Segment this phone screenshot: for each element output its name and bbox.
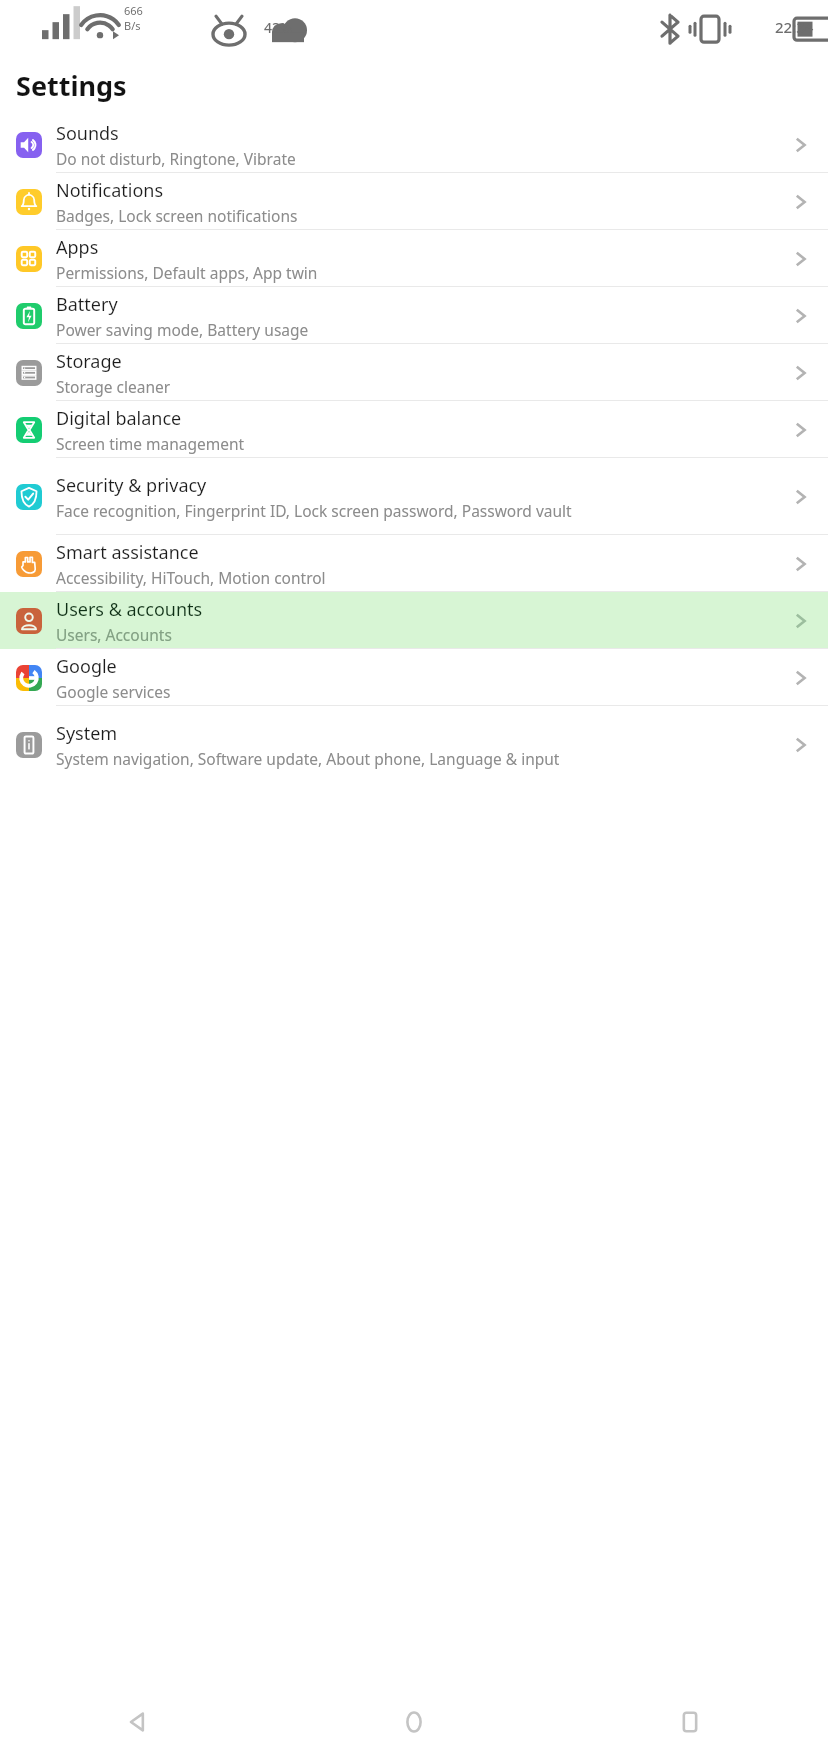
staticText: B/s xyxy=(124,18,141,33)
staticText: Screen time management xyxy=(56,433,245,454)
staticText: Battery xyxy=(56,292,118,317)
button[interactable]: Back xyxy=(0,1696,276,1748)
staticText: Users, Accounts xyxy=(56,624,172,645)
staticText: Notifications xyxy=(56,178,164,203)
other: Open Smart assistance xyxy=(788,551,814,577)
staticText: Users & accounts xyxy=(56,597,203,622)
button[interactable]: Smart assistance xyxy=(0,535,828,592)
staticText: Storage xyxy=(56,349,122,374)
staticText: Google services xyxy=(56,681,171,702)
staticText: Face recognition, Fingerprint ID, Lock s… xyxy=(56,500,572,521)
staticText: Storage cleaner xyxy=(56,376,171,397)
button[interactable]: Apps xyxy=(0,230,828,287)
staticText: Apps xyxy=(56,235,99,260)
other: Open Security & privacy xyxy=(788,484,814,510)
other: Open Notifications xyxy=(788,189,814,215)
other: Open Storage xyxy=(788,360,814,386)
button[interactable]: Storage xyxy=(0,344,828,401)
staticText: Security & privacy xyxy=(56,473,207,498)
staticText: Badges, Lock screen notifications xyxy=(56,205,298,226)
staticText: System xyxy=(56,721,118,746)
staticText: System navigation, Software update, Abou… xyxy=(56,748,560,769)
staticText: 43% xyxy=(264,18,292,37)
staticText: Permissions, Default apps, App twin xyxy=(56,262,318,283)
other: Open Google xyxy=(788,665,814,691)
other: Open System xyxy=(788,732,814,758)
button[interactable]: Google xyxy=(0,649,828,706)
button[interactable]: System xyxy=(0,706,828,783)
staticText: Sounds xyxy=(56,121,119,146)
other: Open Battery xyxy=(788,303,814,329)
other: Open Digital balance xyxy=(788,417,814,443)
other: Open Apps xyxy=(788,246,814,272)
staticText: 22:34 xyxy=(775,17,814,37)
staticText: Settings xyxy=(16,67,127,104)
button[interactable]: Sounds xyxy=(0,116,828,173)
staticText: Digital balance xyxy=(56,406,182,431)
button[interactable]: Home xyxy=(276,1696,552,1748)
button[interactable]: Users & accounts xyxy=(0,592,828,649)
staticText: Do not disturb, Ringtone, Vibrate xyxy=(56,148,296,169)
staticText: Smart assistance xyxy=(56,540,199,565)
other: Open Users & accounts xyxy=(788,608,814,634)
button[interactable]: Security & privacy xyxy=(0,458,828,535)
other: Open Sounds xyxy=(788,132,814,158)
staticText: 666 xyxy=(124,3,143,18)
staticText: Power saving mode, Battery usage xyxy=(56,319,309,340)
button[interactable]: Battery xyxy=(0,287,828,344)
button[interactable]: Recent apps xyxy=(552,1696,828,1748)
button[interactable]: Notifications xyxy=(0,173,828,230)
button[interactable]: Digital balance xyxy=(0,401,828,458)
staticText: Accessibility, HiTouch, Motion control xyxy=(56,567,326,588)
staticText: Google xyxy=(56,654,117,679)
